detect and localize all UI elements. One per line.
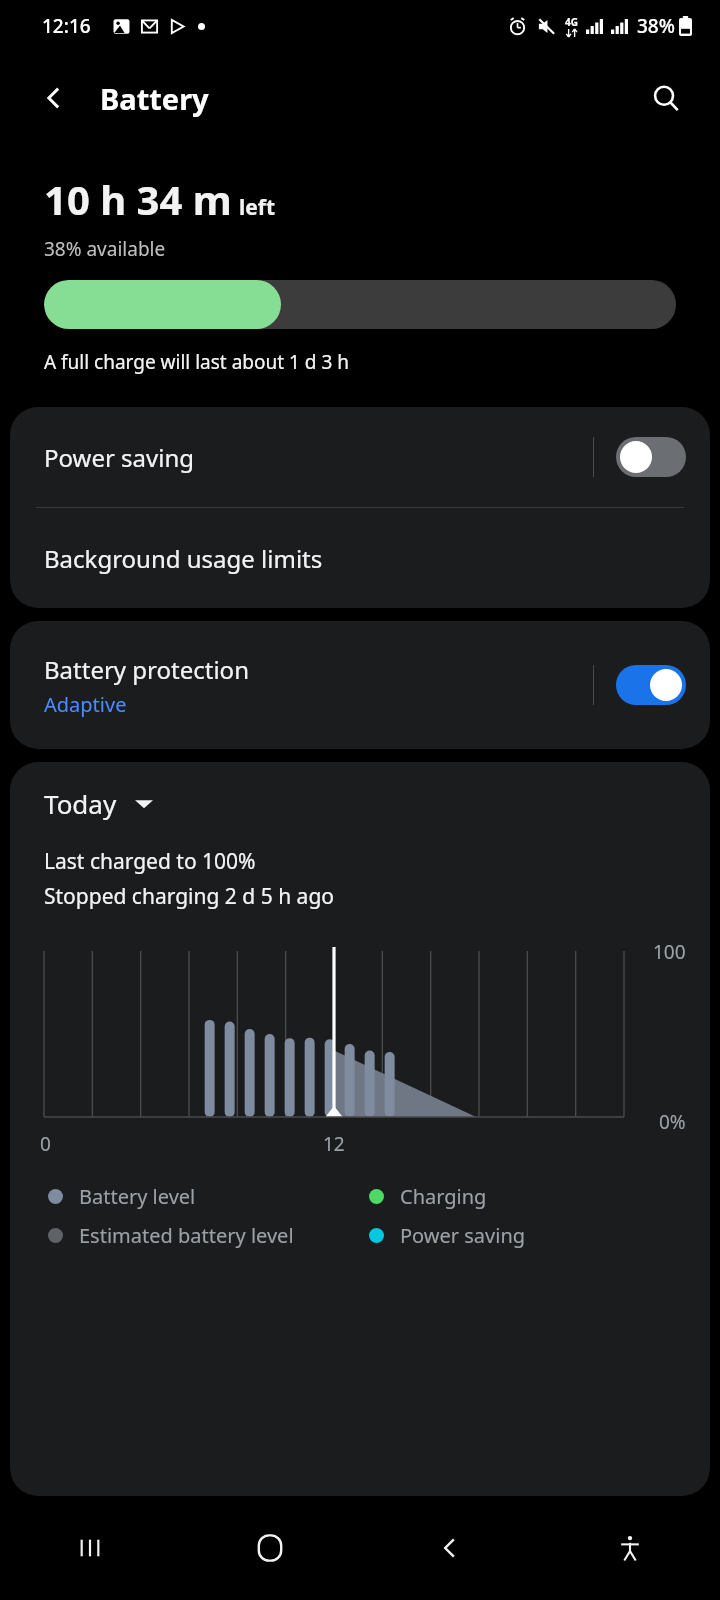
button[interactable]: Back [26, 70, 82, 126]
staticText: Battery protection [44, 653, 249, 686]
button[interactable]: On [616, 665, 686, 705]
staticText: Last charged to 100% [44, 847, 256, 876]
staticText: 10 h 34 m [44, 172, 232, 226]
staticText: A full charge will last about 1 d 3 h [44, 349, 350, 375]
button[interactable]: Home [180, 1496, 360, 1600]
button[interactable]: Back [360, 1496, 540, 1600]
button[interactable]: Search [638, 70, 694, 126]
staticText: 12 [323, 1131, 345, 1157]
staticText: Charging [400, 1183, 487, 1210]
staticText: 38% [637, 13, 675, 39]
staticText: 100 [653, 939, 686, 965]
staticText: Adaptive [44, 691, 127, 718]
staticText: 4G [565, 15, 578, 29]
staticText: 38% available [44, 236, 166, 262]
staticText: 0% [659, 1109, 686, 1135]
staticText: 0 [40, 1131, 51, 1157]
staticText: left [239, 193, 276, 222]
staticText: Stopped charging 2 d 5 h ago [44, 882, 335, 911]
staticText: Battery [100, 79, 209, 118]
staticText: Background usage limits [44, 542, 323, 575]
button[interactable]: Background usage limits [10, 508, 710, 608]
button[interactable]: Off [616, 437, 686, 477]
button[interactable]: Recents [0, 1496, 180, 1600]
button[interactable]: Accessibility [540, 1496, 720, 1600]
staticText: 12:16 [42, 13, 91, 39]
staticText: Today [44, 786, 117, 821]
button[interactable]: Battery protection [10, 621, 710, 749]
staticText: Estimated battery level [79, 1222, 294, 1249]
staticText: Power saving [400, 1222, 526, 1249]
button[interactable]: Power saving [10, 407, 710, 507]
staticText: Power saving [44, 441, 593, 474]
button[interactable]: Today [44, 786, 153, 821]
staticText: Battery level [79, 1183, 196, 1210]
